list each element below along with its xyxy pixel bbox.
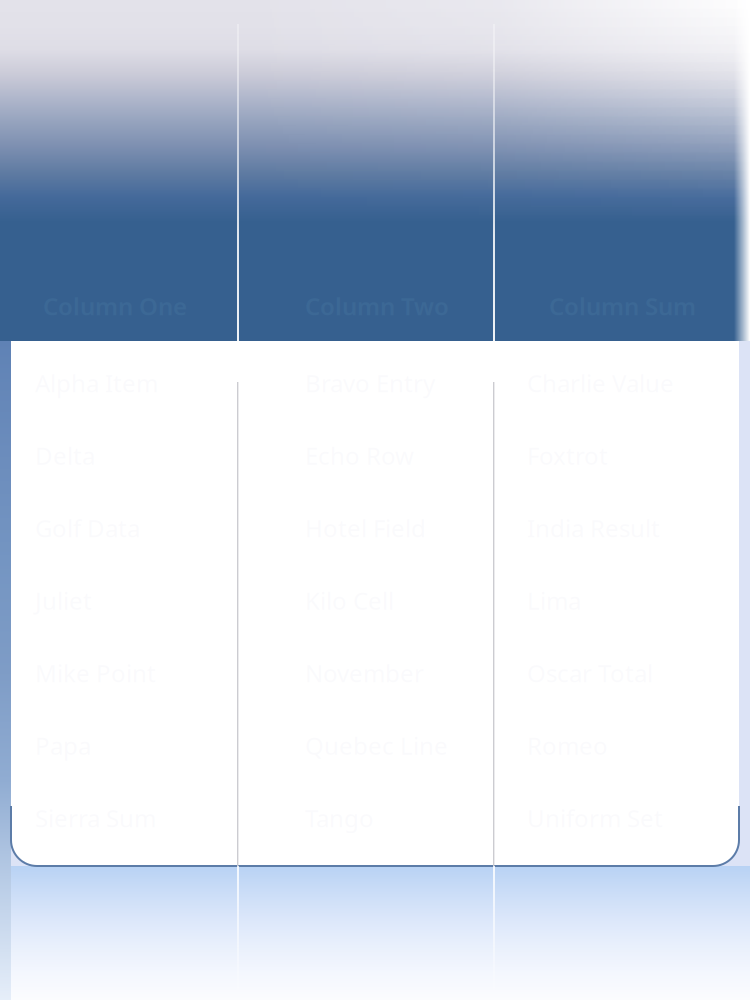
button[interactable]: Romeo [493, 724, 707, 766]
button[interactable]: Column Sum [493, 284, 724, 328]
button[interactable]: Tango [237, 797, 485, 839]
button[interactable]: Lima [493, 579, 707, 621]
button[interactable]: Column Two [237, 284, 480, 328]
button[interactable]: Foxtrot [493, 434, 707, 476]
button[interactable]: Uniform Set [493, 797, 707, 839]
button[interactable]: Sierra Sum [11, 797, 215, 839]
button[interactable]: Kilo Cell [237, 579, 485, 621]
button[interactable]: Quebec Line [237, 724, 485, 766]
button[interactable]: November [237, 652, 485, 694]
button[interactable]: Hotel Field [237, 507, 485, 549]
button[interactable]: India Result [493, 507, 707, 549]
button[interactable]: Oscar Total [493, 652, 707, 694]
button[interactable]: Echo Row [237, 434, 485, 476]
